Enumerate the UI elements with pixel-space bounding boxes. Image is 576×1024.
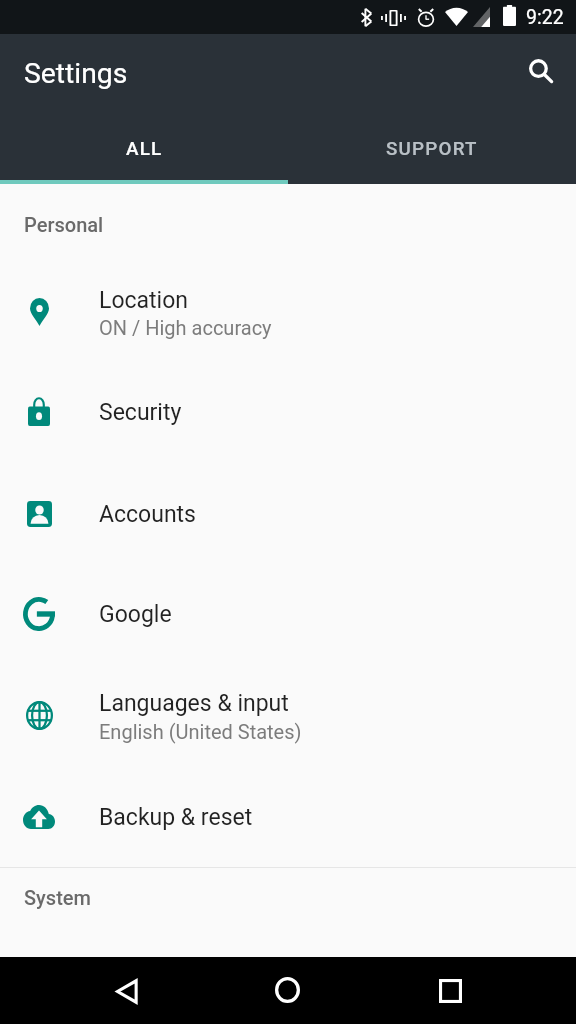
button[interactable]: Backup & reset bbox=[0, 766, 576, 867]
button[interactable]: Back bbox=[102, 967, 150, 1015]
button[interactable]: Google bbox=[0, 564, 576, 665]
button[interactable]: Recent apps bbox=[426, 967, 474, 1015]
staticText: Security bbox=[99, 399, 182, 426]
staticText: SUPPORT bbox=[386, 138, 478, 160]
button[interactable]: SUPPORT bbox=[288, 110, 576, 180]
staticText: Google bbox=[99, 601, 172, 628]
button[interactable]: ALL bbox=[0, 110, 288, 180]
staticText: English (United States) bbox=[99, 720, 302, 743]
staticText: Backup & reset bbox=[99, 804, 253, 831]
staticText: Settings bbox=[24, 57, 128, 90]
button[interactable]: Location bbox=[0, 262, 576, 363]
staticText: ALL bbox=[126, 138, 163, 160]
staticText: Personal bbox=[24, 213, 104, 236]
button[interactable]: Home bbox=[263, 966, 311, 1014]
staticText: System bbox=[24, 886, 91, 909]
button[interactable]: Security bbox=[0, 363, 576, 464]
button[interactable]: Languages & input bbox=[0, 665, 576, 766]
staticText: Location bbox=[99, 287, 188, 314]
staticText: 9:22 bbox=[526, 6, 564, 29]
staticText: Languages & input bbox=[99, 690, 289, 717]
button[interactable]: Search bbox=[517, 47, 565, 95]
button[interactable]: Accounts bbox=[0, 464, 576, 565]
staticText: ON / High accuracy bbox=[99, 316, 272, 339]
staticText: Accounts bbox=[99, 501, 196, 528]
